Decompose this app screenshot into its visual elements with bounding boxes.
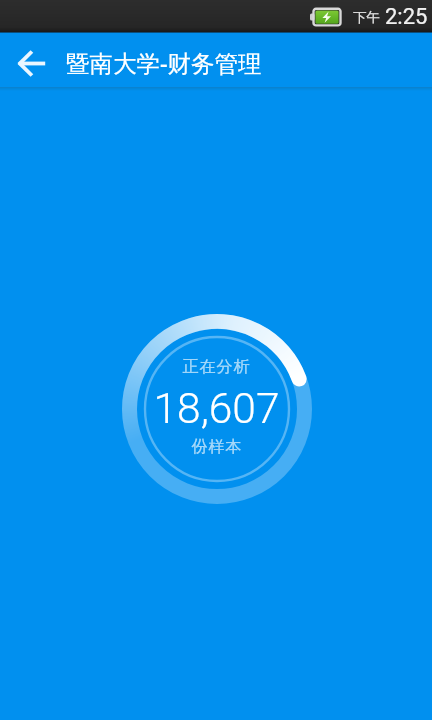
staticText: 18,607 [153,384,280,434]
button[interactable] [0,36,58,90]
staticText: 下午 [353,9,380,26]
staticText: 份样本 [191,437,242,457]
staticText: 正在分析 [182,357,250,377]
staticText: 暨南大学-财务管理 [66,47,262,79]
staticText: 2:25 [385,4,428,30]
